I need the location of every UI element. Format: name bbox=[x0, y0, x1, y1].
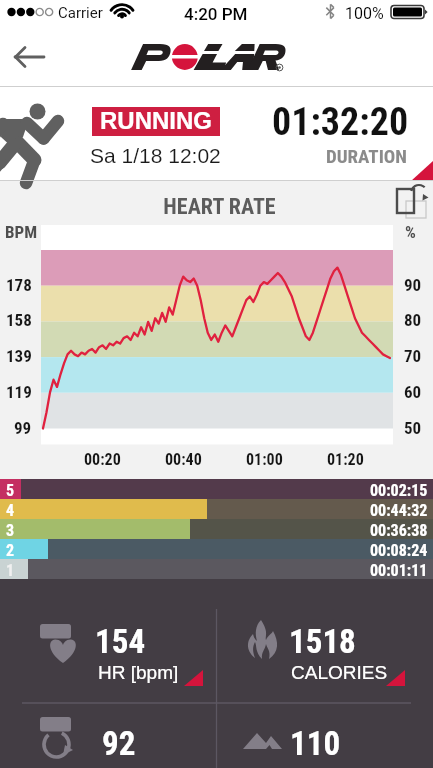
staticText: Sa 1/18 12:02 bbox=[90, 144, 221, 167]
button[interactable]: 110 bbox=[217, 703, 433, 768]
staticText: 00:20 bbox=[84, 450, 121, 469]
button[interactable]: 2 bbox=[0, 539, 433, 559]
staticText: 00:36:38 bbox=[370, 521, 428, 540]
staticText: 154 bbox=[95, 622, 146, 661]
staticText: % bbox=[405, 222, 416, 242]
staticText: 00:40 bbox=[165, 450, 202, 469]
staticText: 4:20 PM bbox=[184, 4, 248, 24]
staticText: 100% bbox=[345, 4, 384, 23]
button[interactable]: 1518 bbox=[217, 581, 433, 703]
staticText: 1518 bbox=[289, 622, 356, 661]
staticText: 00:44:32 bbox=[370, 501, 428, 520]
staticText: 158 bbox=[6, 310, 32, 330]
staticText: 00:08:24 bbox=[370, 541, 428, 560]
staticText: BPM bbox=[5, 222, 38, 242]
staticText: 00:01:11 bbox=[370, 561, 428, 580]
staticText: 01:00 bbox=[246, 450, 283, 469]
staticText: DURATION bbox=[326, 145, 407, 167]
staticText: 1 bbox=[6, 561, 15, 580]
staticText: 92 bbox=[102, 724, 136, 763]
staticText: CALORIES bbox=[291, 662, 388, 683]
button[interactable]: Back bbox=[0, 28, 58, 86]
staticText: 119 bbox=[6, 382, 32, 402]
staticText: 4 bbox=[6, 501, 15, 520]
staticText: 01:32:20 bbox=[272, 100, 409, 145]
staticText: 70 bbox=[404, 346, 422, 366]
button[interactable]: 1 bbox=[0, 559, 433, 579]
button[interactable]: 92 bbox=[0, 703, 216, 768]
staticText: 90 bbox=[404, 275, 422, 295]
button[interactable]: 5 bbox=[0, 479, 433, 499]
staticText: RUNNING bbox=[100, 107, 212, 134]
staticText: 00:02:15 bbox=[370, 481, 428, 500]
staticText: 50 bbox=[404, 418, 422, 438]
staticText: 2 bbox=[6, 541, 15, 560]
staticText: 5 bbox=[6, 481, 15, 500]
button[interactable]: 154 bbox=[0, 581, 216, 703]
button[interactable]: 3 bbox=[0, 519, 433, 539]
button[interactable]: RUNNING bbox=[0, 87, 433, 181]
staticText: 178 bbox=[6, 275, 32, 295]
staticText: Carrier bbox=[58, 4, 103, 22]
staticText: 60 bbox=[404, 382, 422, 402]
staticText: HEART RATE bbox=[3, 194, 433, 220]
staticText: 110 bbox=[290, 724, 341, 763]
staticText: 01:20 bbox=[327, 450, 364, 469]
button[interactable]: 4 bbox=[0, 499, 433, 519]
button[interactable]: Rotate screen bbox=[392, 184, 430, 222]
staticText: 139 bbox=[6, 346, 32, 366]
staticText: 80 bbox=[404, 310, 422, 330]
staticText: 99 bbox=[14, 418, 32, 438]
staticText: HR [bpm] bbox=[98, 662, 179, 683]
staticText: 3 bbox=[6, 521, 15, 540]
